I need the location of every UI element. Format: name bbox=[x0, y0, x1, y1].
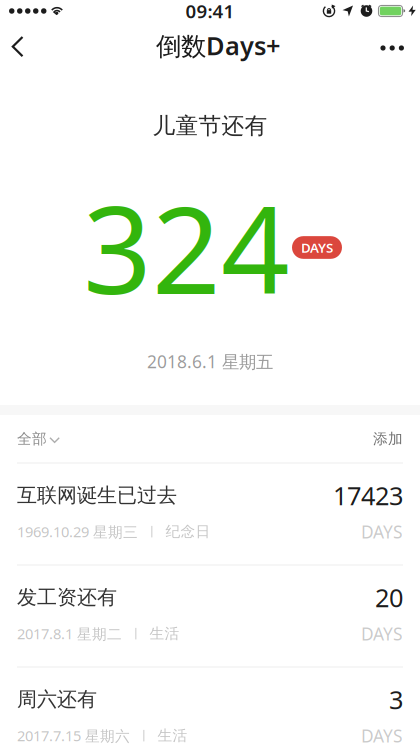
staticText: 添加 bbox=[373, 430, 403, 448]
staticText: 1969.10.29 星期三 bbox=[17, 522, 138, 541]
staticText: 互联网诞生已过去 bbox=[17, 483, 177, 508]
button[interactable] bbox=[0, 22, 24, 64]
button[interactable]: 全部 bbox=[17, 418, 60, 460]
staticText: 2017.8.1 星期二 bbox=[17, 624, 122, 643]
staticText: 儿童节还有 bbox=[152, 112, 267, 140]
staticText: 17423 bbox=[333, 478, 403, 512]
staticText: 倒数Days+ bbox=[156, 29, 280, 62]
staticText: 20 bbox=[375, 580, 403, 614]
staticText: 纪念日 bbox=[165, 523, 210, 541]
button[interactable]: 周六还有 bbox=[0, 667, 420, 747]
staticText: 2017.7.15 星期六 bbox=[17, 726, 130, 745]
staticText: 周六还有 bbox=[17, 687, 97, 712]
staticText: 生活 bbox=[149, 625, 179, 643]
staticText: 全部 bbox=[17, 430, 47, 448]
staticText: DAYS bbox=[361, 724, 403, 747]
staticText: 2018.6.1 星期五 bbox=[147, 350, 273, 373]
button[interactable]: 发工资还有 bbox=[0, 565, 420, 666]
button[interactable]: 添加 bbox=[373, 418, 403, 460]
staticText: 发工资还有 bbox=[17, 585, 117, 610]
staticText: 324 bbox=[83, 168, 290, 327]
staticText: DAYS bbox=[301, 239, 333, 256]
staticText: 生活 bbox=[157, 727, 187, 745]
button[interactable]: 互联网诞生已过去 bbox=[0, 463, 420, 564]
staticText: 3 bbox=[389, 682, 403, 716]
button[interactable] bbox=[380, 23, 420, 63]
staticText: DAYS bbox=[361, 520, 403, 543]
staticText: 09:41 bbox=[185, 0, 234, 23]
staticText: DAYS bbox=[361, 622, 403, 645]
